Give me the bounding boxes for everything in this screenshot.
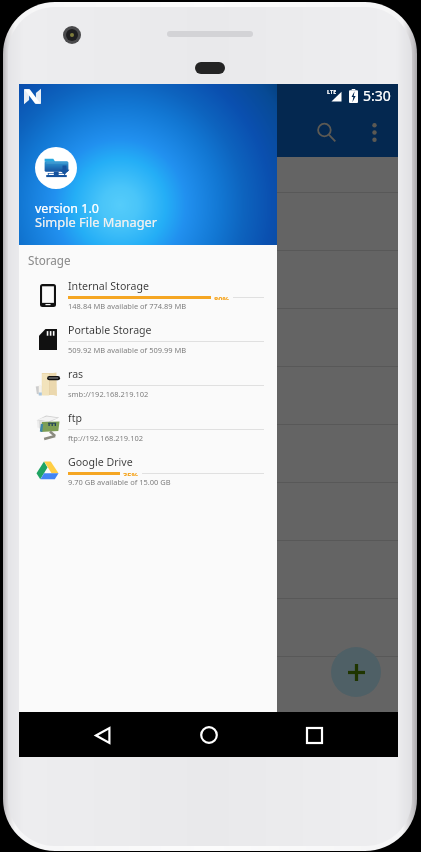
staticText: 35% bbox=[123, 470, 139, 476]
staticText: smb://192.168.219.102 bbox=[68, 389, 149, 399]
staticText: Portable Storage bbox=[68, 323, 152, 337]
button[interactable]: Google Drive bbox=[19, 449, 277, 493]
staticText: version 1.0 bbox=[35, 200, 99, 217]
button[interactable]: Back bbox=[81, 713, 125, 757]
staticText: LTE bbox=[327, 88, 337, 95]
button[interactable]: ras bbox=[19, 361, 277, 405]
staticText: 5:30 bbox=[363, 86, 391, 105]
button[interactable]: Search bbox=[304, 110, 348, 154]
staticText: Storage bbox=[28, 252, 71, 268]
button[interactable]: ftp bbox=[19, 405, 277, 449]
staticText: ftp://192.168.219.102 bbox=[68, 433, 143, 443]
staticText: Internal Storage bbox=[68, 279, 149, 293]
staticText: Google Drive bbox=[68, 455, 133, 469]
staticText: Simple File Manager bbox=[35, 213, 158, 230]
staticText: ftp bbox=[68, 411, 82, 425]
button[interactable]: Recents bbox=[292, 713, 336, 757]
button[interactable]: Home bbox=[187, 713, 231, 757]
staticText: 509.92 MB available of 509.99 MB bbox=[68, 345, 187, 355]
button[interactable]: Portable Storage bbox=[19, 317, 277, 361]
button[interactable]: Add bbox=[331, 647, 381, 697]
staticText: ras bbox=[68, 367, 84, 381]
button[interactable]: More options bbox=[352, 110, 396, 154]
staticText: 9.70 GB available of 15.00 GB bbox=[68, 477, 171, 487]
staticText: 80% bbox=[214, 294, 230, 300]
staticText: 148.84 MB available of 774.89 MB bbox=[68, 301, 187, 311]
button[interactable]: Internal Storage bbox=[19, 273, 277, 317]
